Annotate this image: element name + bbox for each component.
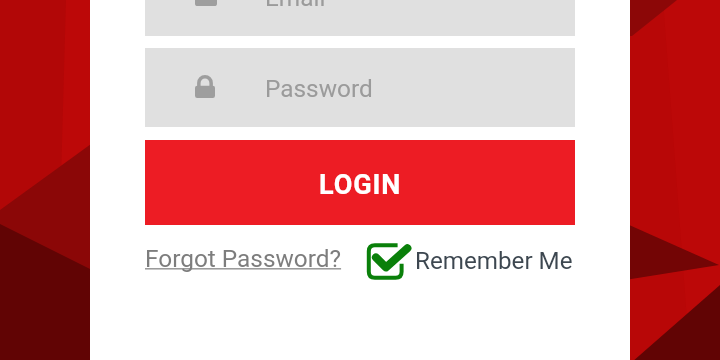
button[interactable]: LOGIN — [145, 140, 575, 225]
staticText: Email — [265, 0, 326, 12]
button[interactable]: Forgot Password? — [145, 238, 342, 278]
button[interactable]: Email — [145, 0, 575, 36]
staticText: LOGIN — [319, 169, 402, 201]
staticText: Password — [265, 74, 373, 103]
button[interactable]: Remember Me checkbox — [363, 238, 573, 288]
button[interactable]: Password — [145, 48, 575, 127]
other: Remember Me checkbox — [363, 238, 413, 288]
staticText: Forgot Password? — [145, 244, 342, 273]
staticText: Remember Me — [415, 247, 573, 275]
